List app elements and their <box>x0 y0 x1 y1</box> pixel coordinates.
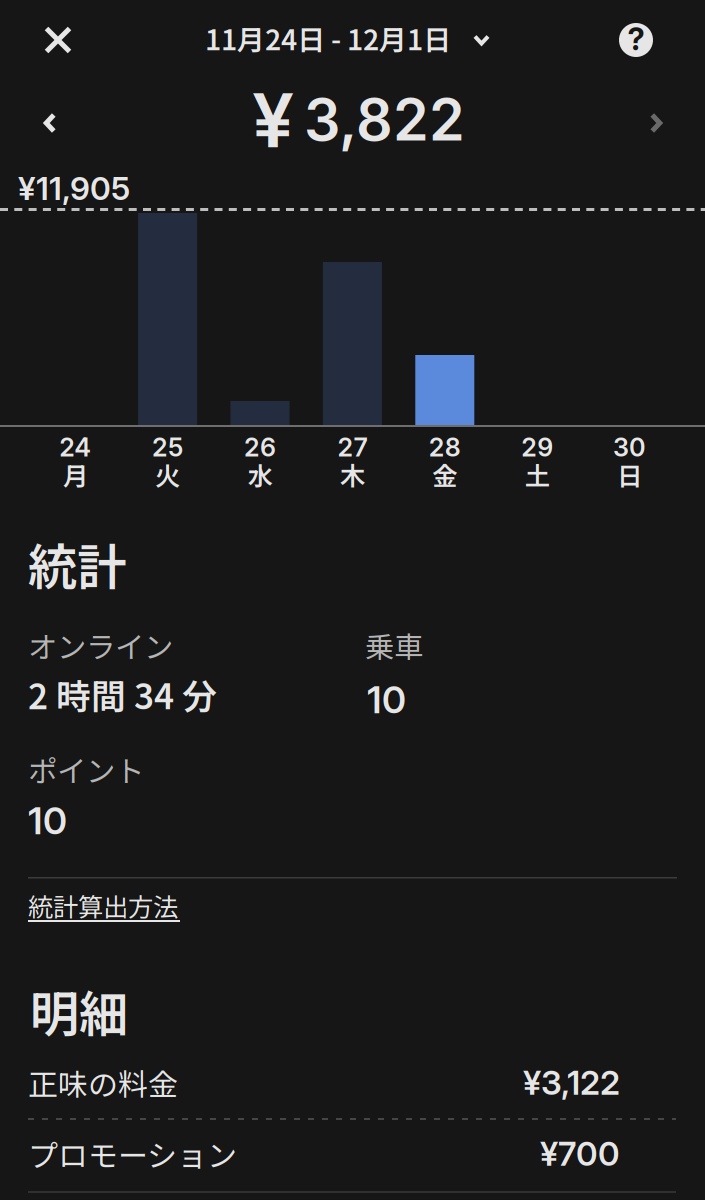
button[interactable]: 統計算出方法 <box>28 887 180 927</box>
staticText: 乗車 <box>365 624 423 666</box>
staticText: 10 <box>367 677 406 722</box>
staticText: 29 <box>521 432 553 463</box>
staticText: オンライン <box>28 624 173 666</box>
staticText: 金 <box>432 456 457 493</box>
staticText: ポイント <box>28 748 144 790</box>
staticText: 26 <box>244 432 276 463</box>
button[interactable]: Next week <box>627 94 685 152</box>
staticText: プロモーション <box>28 1132 237 1175</box>
staticText: 統計 <box>28 528 126 599</box>
staticText: ? <box>627 20 644 57</box>
staticText: ¥11,905 <box>18 169 130 208</box>
staticText: 月 <box>63 456 88 493</box>
button[interactable]: Close <box>26 8 90 72</box>
staticText: 統計算出方法 <box>28 887 178 924</box>
staticText: 木 <box>340 456 365 493</box>
button[interactable]: Previous week <box>21 94 79 152</box>
button[interactable]: Help <box>605 9 667 71</box>
staticText: 正味の料金 <box>28 1061 178 1104</box>
staticText: 明細 <box>30 975 128 1046</box>
staticText: 水 <box>247 456 272 493</box>
staticText: 火 <box>155 456 180 493</box>
staticText: 11月24日 - 12月1日 <box>205 18 451 58</box>
staticText: 2 時間 34 分 <box>28 669 217 719</box>
staticText: 土 <box>525 456 550 493</box>
button[interactable]: 11月24日 - 12月1日 <box>195 9 500 67</box>
staticText: 日 <box>617 456 642 493</box>
staticText: 25 <box>152 432 183 463</box>
staticText: 27 <box>337 432 367 463</box>
staticText: 28 <box>429 432 461 463</box>
staticText: ¥700 <box>540 1134 620 1174</box>
staticText: ¥3,122 <box>523 1063 620 1103</box>
staticText: 30 <box>613 432 646 463</box>
staticText: 10 <box>28 798 67 843</box>
staticText: ¥ <box>252 75 294 165</box>
staticText: 24 <box>59 432 91 463</box>
staticText: 3,822 <box>304 85 465 154</box>
